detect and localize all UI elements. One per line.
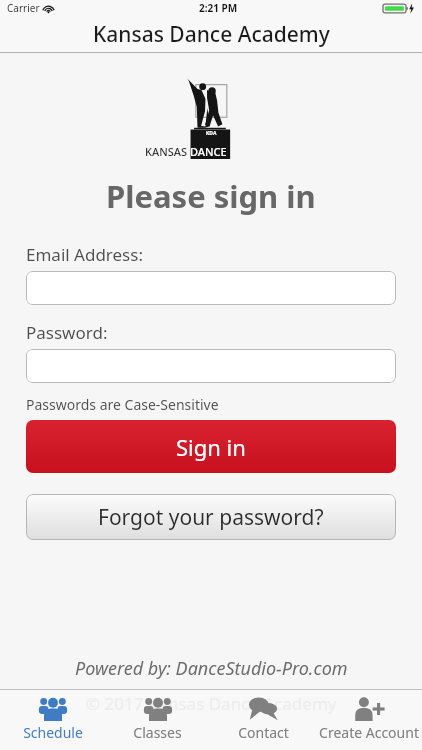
staticText: Powered by: DanceStudio-Pro.com xyxy=(75,656,348,681)
staticText: Email Address: xyxy=(26,243,143,266)
staticText: Passwords are Case-Sensitive xyxy=(26,395,219,414)
staticText: Please sign in xyxy=(106,175,316,217)
staticText: Classes xyxy=(133,723,182,742)
button[interactable]: Create Account xyxy=(316,690,422,750)
button[interactable]: People xyxy=(0,690,105,750)
other: People xyxy=(143,696,173,721)
button[interactable]: Sign in xyxy=(26,420,396,473)
staticText: Password: xyxy=(26,321,108,344)
staticText: KANSAS xyxy=(145,144,190,159)
staticText: Carrier xyxy=(7,1,40,15)
other: Create Account xyxy=(354,696,384,721)
staticText: KDA xyxy=(206,130,217,137)
button[interactable]: Forgot your password? xyxy=(26,494,396,540)
staticText: 2:21 PM xyxy=(199,1,238,15)
staticText: Create Account xyxy=(319,723,419,742)
staticText: Kansas Dance Academy xyxy=(93,20,330,49)
staticText: © 2017 Kansas Dance Academy xyxy=(86,692,337,715)
other: Contact xyxy=(248,696,278,721)
button[interactable]: Password xyxy=(26,349,396,383)
button[interactable]: People xyxy=(105,690,210,750)
button[interactable]: Email Address xyxy=(26,271,396,305)
button[interactable]: Contact xyxy=(210,690,316,750)
staticText: Schedule xyxy=(23,723,83,742)
staticText: DANCE xyxy=(190,144,227,159)
staticText: Forgot your password? xyxy=(98,503,324,532)
other: People xyxy=(38,696,68,721)
staticText: Sign in xyxy=(176,432,246,462)
staticText: Contact xyxy=(238,723,289,742)
staticText: ACADEMY xyxy=(227,144,277,159)
